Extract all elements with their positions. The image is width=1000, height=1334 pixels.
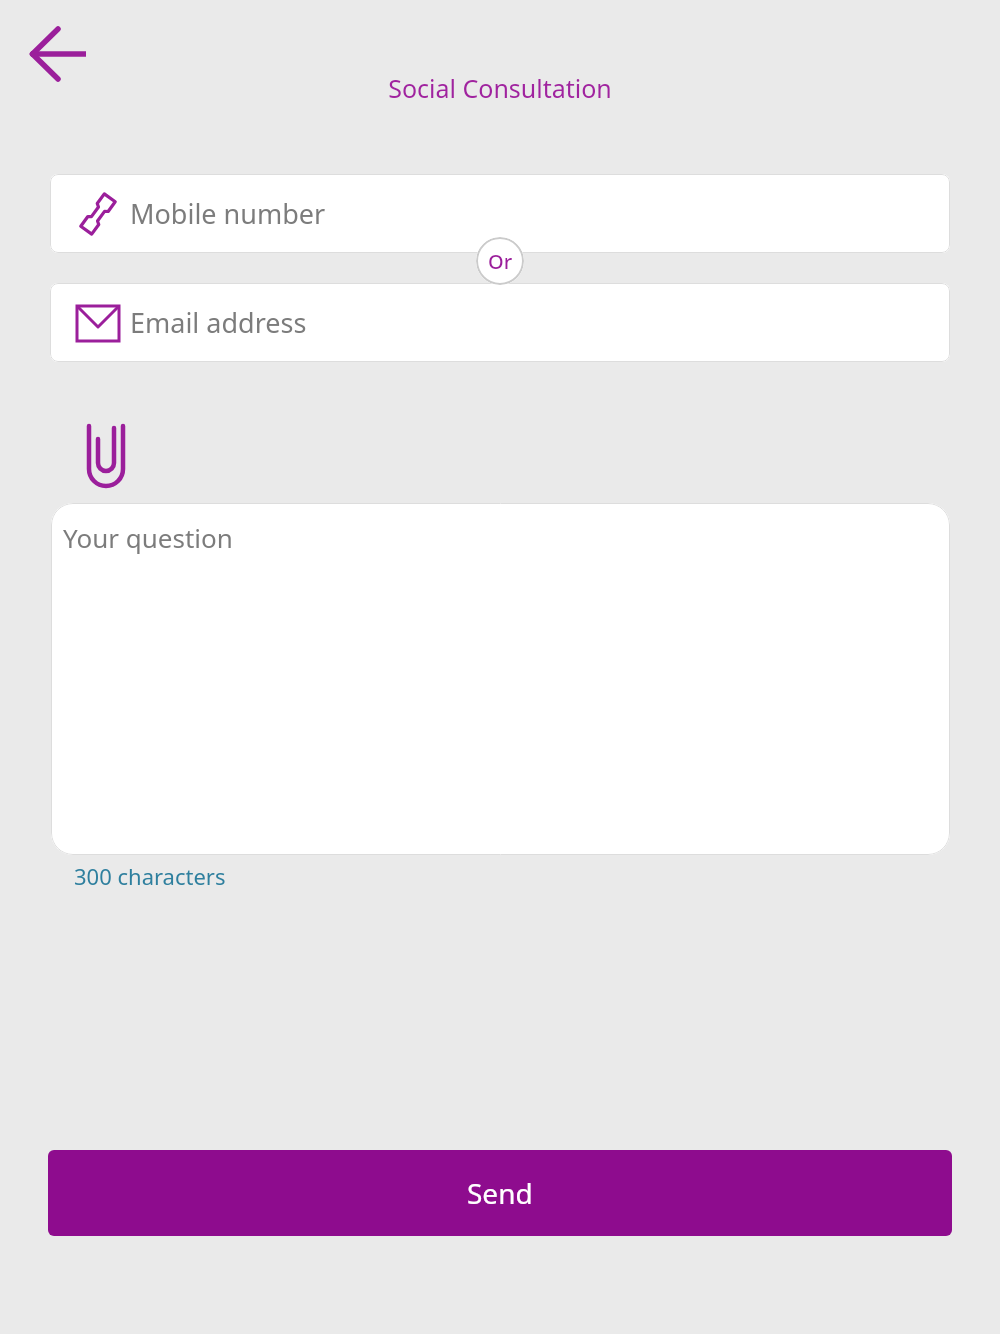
staticText: Send	[467, 1174, 533, 1212]
staticText: Your question	[63, 520, 233, 555]
staticText: Or	[488, 248, 513, 275]
button[interactable]: Attach file	[76, 416, 136, 496]
button[interactable]: Your question	[51, 503, 950, 855]
staticText: 300 characters	[74, 861, 226, 891]
staticText: Mobile number	[130, 195, 326, 232]
button[interactable]: Back	[16, 22, 100, 86]
staticText: Email address	[130, 304, 307, 341]
staticText: Social Consultation	[388, 71, 612, 105]
button[interactable]: Send	[48, 1150, 952, 1236]
button[interactable]: Mobile number input	[50, 174, 950, 253]
button[interactable]: Email address input	[50, 283, 950, 362]
